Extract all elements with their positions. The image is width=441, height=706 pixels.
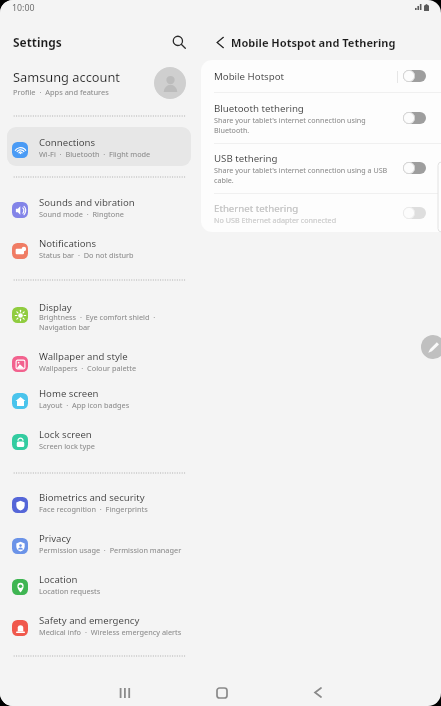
staticText: Mobile Hotspot and Tethering	[231, 35, 396, 50]
button[interactable]: Ethernet tethering	[201, 202, 441, 231]
button[interactable]: Notifications	[7, 229, 191, 267]
button[interactable]: Sounds and vibration	[7, 188, 191, 226]
staticText: Settings	[13, 34, 62, 50]
staticText: Lock screen	[39, 428, 92, 441]
staticText: Wi-Fi · Bluetooth · Flight mode	[39, 149, 151, 159]
button[interactable]: Edit	[421, 335, 441, 359]
staticText: Permission usage · Permission manager	[39, 545, 182, 555]
staticText: Notifications	[39, 237, 97, 250]
staticText: Location requests	[39, 586, 101, 596]
staticText: Status bar · Do not disturb	[39, 250, 134, 260]
button[interactable]: Location	[7, 565, 191, 603]
button[interactable]: Safety and emergency	[7, 606, 191, 644]
staticText: Brightness · Eye comfort shield ·	[39, 312, 156, 322]
staticText: Display	[39, 301, 72, 314]
staticText: No USB Ethernet adapter connected	[214, 215, 337, 225]
button[interactable]: Search	[165, 28, 192, 55]
staticText: cable.	[214, 175, 234, 185]
button[interactable]: Home screen	[7, 379, 191, 417]
button[interactable]: Lock screen	[7, 420, 191, 458]
staticText: Face recognition · Fingerprints	[39, 504, 148, 514]
staticText: Connections	[39, 136, 96, 149]
staticText: Mobile Hotspot	[214, 70, 285, 83]
button[interactable]: Mobile Hotspot	[201, 70, 441, 95]
staticText: Biometrics and security	[39, 491, 145, 504]
button[interactable]: Biometrics and security	[7, 483, 191, 521]
staticText: Privacy	[39, 532, 71, 545]
button[interactable]: Recents	[108, 677, 139, 706]
staticText: Profile · Apps and features	[13, 87, 109, 97]
staticText: Navigation bar	[39, 322, 91, 332]
staticText: Home screen	[39, 387, 99, 400]
staticText: Wallpaper and style	[39, 350, 128, 363]
staticText: Location	[39, 573, 78, 586]
staticText: Bluetooth.	[214, 125, 250, 135]
button[interactable]: Privacy	[7, 524, 191, 562]
staticText: Safety and emergency	[39, 614, 140, 627]
button[interactable]	[7, 127, 191, 166]
staticText: Share your tablet's internet connection …	[214, 165, 388, 175]
staticText: Share your tablet's internet connection …	[214, 115, 366, 125]
staticText: Bluetooth tethering	[214, 102, 304, 115]
button[interactable]: Display	[7, 293, 191, 331]
staticText: Screen lock type	[39, 441, 95, 451]
staticText: Medical info · Wireless emergency alerts	[39, 627, 182, 637]
button[interactable]: Back	[302, 677, 333, 706]
staticText: USB tethering	[214, 152, 278, 165]
staticText: Sounds and vibration	[39, 196, 135, 209]
button[interactable]: Bluetooth tethering	[201, 102, 441, 141]
button[interactable]: Wallpaper and style	[7, 342, 191, 380]
button[interactable]: USB tethering	[201, 152, 441, 191]
staticText: 10:00	[12, 2, 35, 14]
button[interactable]: Home	[206, 677, 237, 706]
button[interactable]: Connections	[7, 128, 191, 166]
staticText: Sound mode · Ringtone	[39, 209, 124, 219]
button[interactable]: Back	[207, 29, 234, 56]
button[interactable]: Samsung account	[0, 62, 199, 104]
staticText: Samsung account	[13, 68, 120, 85]
staticText: Layout · App icon badges	[39, 400, 130, 410]
staticText: Wallpapers · Colour palette	[39, 363, 137, 373]
staticText: Ethernet tethering	[214, 202, 299, 215]
